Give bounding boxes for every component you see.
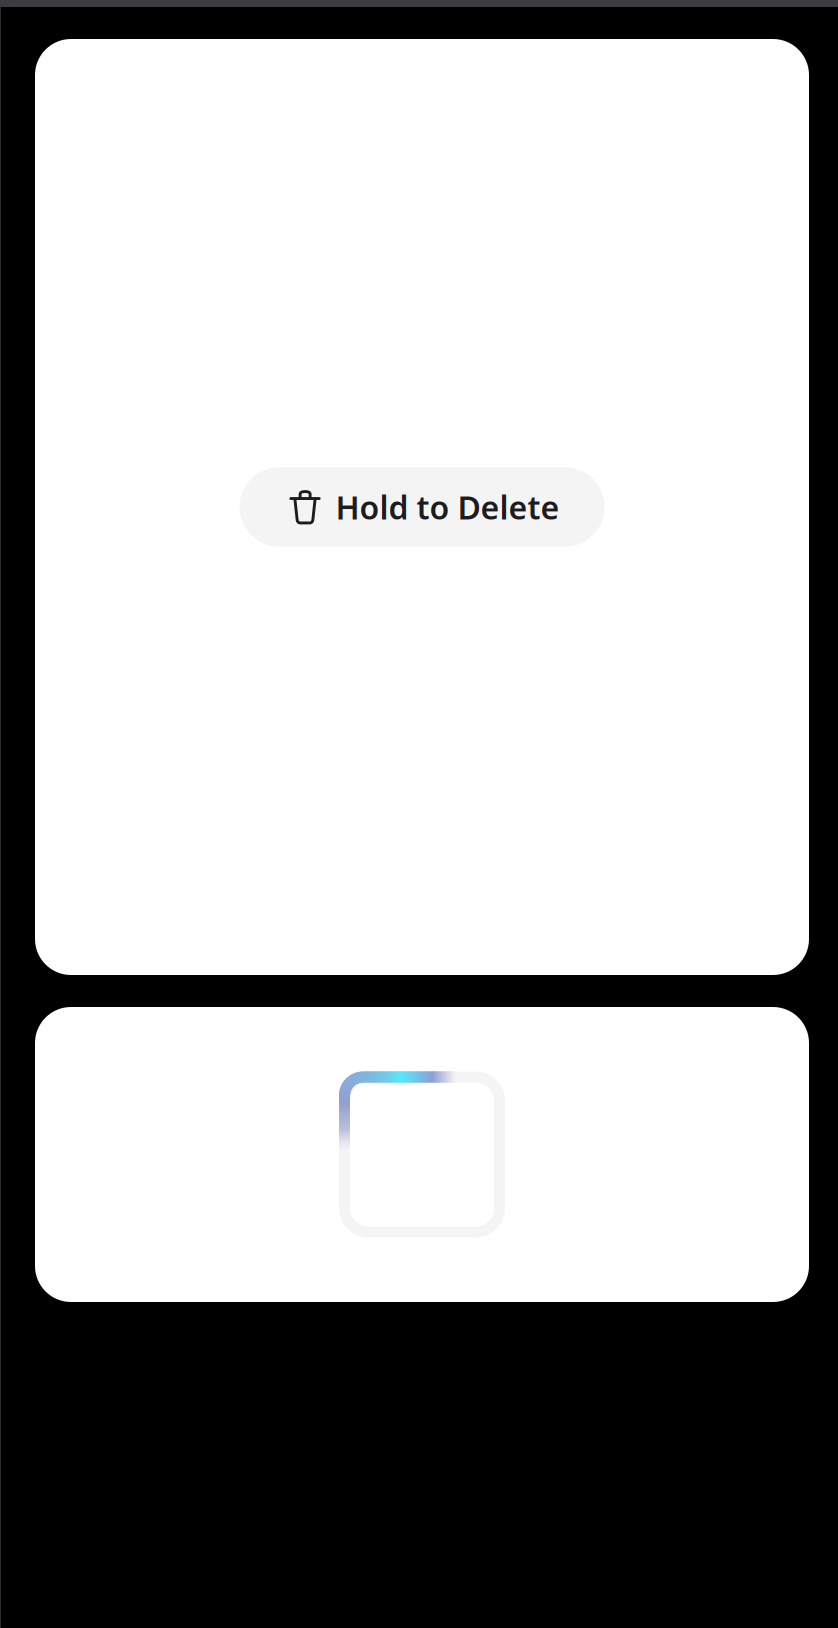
button[interactable]: Hold to Delete	[239, 467, 604, 547]
staticText: Hold to Delete	[335, 486, 559, 528]
